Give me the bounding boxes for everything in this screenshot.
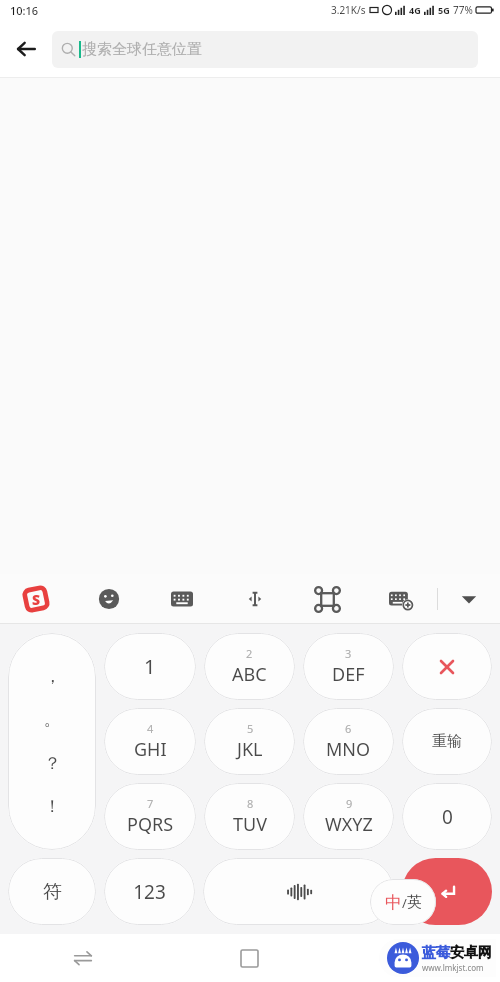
staticText: 。 xyxy=(44,709,61,730)
staticText: 123 xyxy=(133,879,166,905)
staticText: 3 xyxy=(345,646,352,661)
staticText: 蓝莓 xyxy=(422,944,450,962)
staticText: ABC xyxy=(232,662,267,687)
staticText: S xyxy=(32,590,41,609)
staticText: DEF xyxy=(332,662,365,687)
staticText: 5G xyxy=(438,4,450,16)
button[interactable]: Retype xyxy=(402,708,492,775)
staticText: 符 xyxy=(43,880,62,904)
button[interactable]: 7 xyxy=(104,783,196,850)
staticText: 搜索全球任意位置 xyxy=(82,40,202,59)
staticText: 10:16 xyxy=(10,3,39,18)
staticText: 6 xyxy=(345,721,352,736)
staticText: 中 xyxy=(385,892,402,913)
staticText: 8 xyxy=(247,796,254,811)
button[interactable]: 3 xyxy=(303,633,394,700)
button[interactable]: 5 xyxy=(204,708,295,775)
button[interactable]: Shortcuts xyxy=(291,574,364,624)
staticText: WXYZ xyxy=(325,812,373,837)
button[interactable]: Voice input xyxy=(203,858,394,925)
button[interactable]: Sogou input method xyxy=(0,574,72,624)
button[interactable]: 8 xyxy=(204,783,295,850)
staticText: 77% xyxy=(453,3,473,17)
staticText: / xyxy=(402,894,407,912)
staticText: 英 xyxy=(407,893,422,912)
button[interactable]: Emoji xyxy=(72,574,145,624)
staticText: MNO xyxy=(326,737,371,762)
button[interactable]: Enter xyxy=(402,858,492,925)
staticText: 3.21K/s xyxy=(331,3,366,17)
staticText: 1 xyxy=(144,653,156,680)
staticText: ！ xyxy=(44,796,61,817)
button[interactable]: Move cursor xyxy=(218,574,291,624)
button[interactable]: Keyboard settings xyxy=(364,574,437,624)
staticText: ？ xyxy=(44,753,61,774)
button[interactable]: Hide keyboard xyxy=(438,574,500,624)
button[interactable]: 搜索全球任意位置 xyxy=(52,31,478,68)
button[interactable]: Symbols xyxy=(8,858,96,925)
button[interactable]: Numbers xyxy=(104,858,195,925)
staticText: 安卓网 xyxy=(450,944,492,962)
button[interactable]: Zero xyxy=(402,783,492,850)
staticText: JKL xyxy=(237,737,263,762)
button[interactable]: Delete xyxy=(402,633,492,700)
staticText: ， xyxy=(44,666,61,687)
button[interactable]: Recent apps xyxy=(166,934,333,982)
staticText: GHI xyxy=(134,737,167,762)
staticText: PQRS xyxy=(127,812,174,837)
button[interactable]: 2 xyxy=(204,633,295,700)
button[interactable]: 4 xyxy=(104,708,196,775)
staticText: 9 xyxy=(346,796,353,811)
button[interactable]: 9 xyxy=(303,783,394,850)
staticText: 4G xyxy=(409,4,421,16)
button[interactable]: Back xyxy=(0,934,166,982)
button[interactable]: Punctuation xyxy=(8,633,96,850)
staticText: 2 xyxy=(246,646,253,661)
button[interactable]: Keyboard layout xyxy=(145,574,218,624)
staticText: 0 xyxy=(442,804,453,830)
staticText: 5 xyxy=(247,721,254,736)
staticText: TUV xyxy=(233,812,267,837)
button[interactable]: 1 xyxy=(104,633,196,700)
button[interactable]: Back xyxy=(0,23,52,75)
staticText: 4 xyxy=(147,721,154,736)
button[interactable]: Chinese English toggle xyxy=(370,879,436,925)
button[interactable]: 6 xyxy=(303,708,394,775)
staticText: www.lmkjst.com xyxy=(422,962,484,973)
staticText: 7 xyxy=(147,796,154,811)
staticText: 重输 xyxy=(432,732,462,751)
